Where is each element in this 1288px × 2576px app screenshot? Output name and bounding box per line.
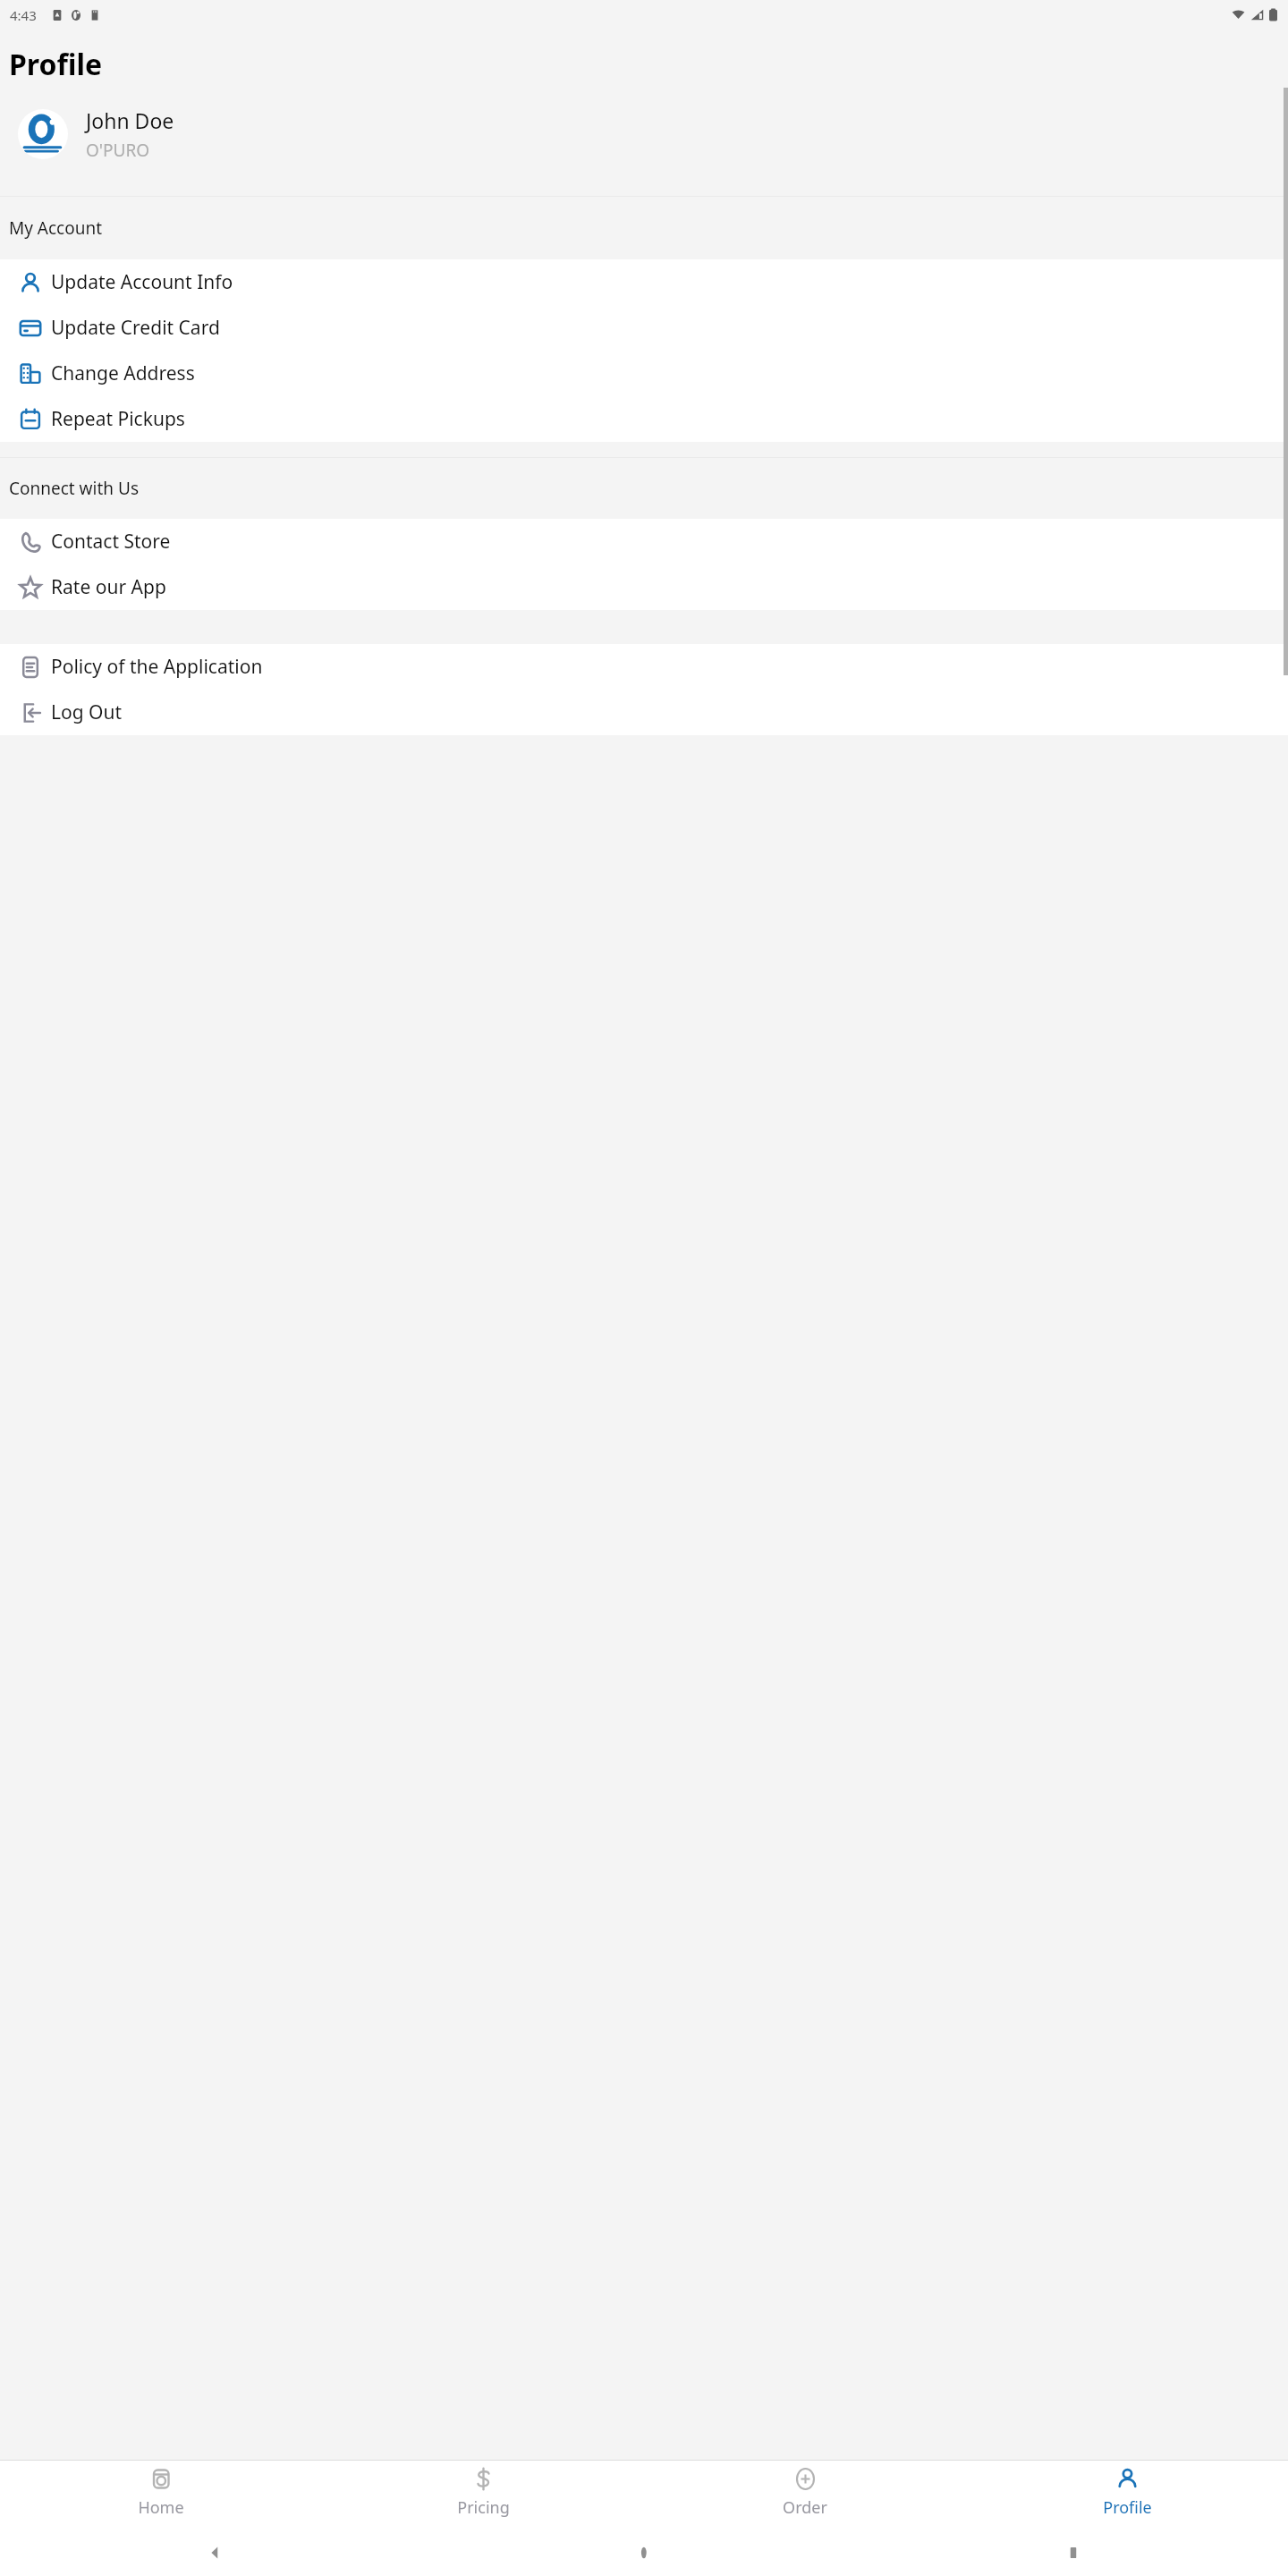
button[interactable]: Profile bbox=[966, 2461, 1288, 2529]
staticText: Order bbox=[783, 2496, 827, 2519]
button[interactable]: Contact Store bbox=[0, 519, 1288, 564]
button[interactable]: Update Account Info bbox=[0, 259, 1288, 305]
button[interactable]: Rate our App bbox=[0, 564, 1288, 610]
button[interactable]: Home bbox=[0, 2461, 322, 2529]
staticText: Update Account Info bbox=[51, 269, 233, 295]
staticText: 4:43 bbox=[10, 6, 37, 24]
staticText: Connect with Us bbox=[9, 477, 139, 500]
button[interactable]: Update Credit Card bbox=[0, 305, 1288, 351]
staticText: Rate our App bbox=[51, 574, 166, 600]
button[interactable]: Repeat Pickups bbox=[0, 396, 1288, 442]
staticText: Contact Store bbox=[51, 529, 171, 555]
button[interactable]: Log Out bbox=[0, 690, 1288, 735]
staticText: Log Out bbox=[51, 699, 123, 725]
button[interactable]: Home bbox=[634, 2543, 654, 2563]
button[interactable]: Recent apps bbox=[1063, 2543, 1083, 2563]
staticText: Policy of the Application bbox=[51, 654, 263, 680]
button[interactable]: Order bbox=[644, 2461, 966, 2529]
staticText: John Doe bbox=[86, 106, 174, 134]
button[interactable]: Back bbox=[205, 2543, 225, 2563]
staticText: Repeat Pickups bbox=[51, 406, 185, 432]
button[interactable]: Pricing bbox=[322, 2461, 644, 2529]
staticText: O'PURO bbox=[86, 139, 150, 162]
staticText: Profile bbox=[9, 45, 103, 84]
staticText: Update Credit Card bbox=[51, 315, 220, 341]
staticText: Home bbox=[138, 2496, 184, 2519]
staticText: Pricing bbox=[457, 2496, 510, 2519]
staticText: Profile bbox=[1103, 2496, 1152, 2519]
button[interactable]: Policy of the Application bbox=[0, 644, 1288, 690]
button[interactable]: Change Address bbox=[0, 351, 1288, 396]
staticText: Change Address bbox=[51, 360, 195, 386]
staticText: My Account bbox=[9, 216, 103, 240]
button[interactable]: John Doe bbox=[18, 106, 1288, 162]
